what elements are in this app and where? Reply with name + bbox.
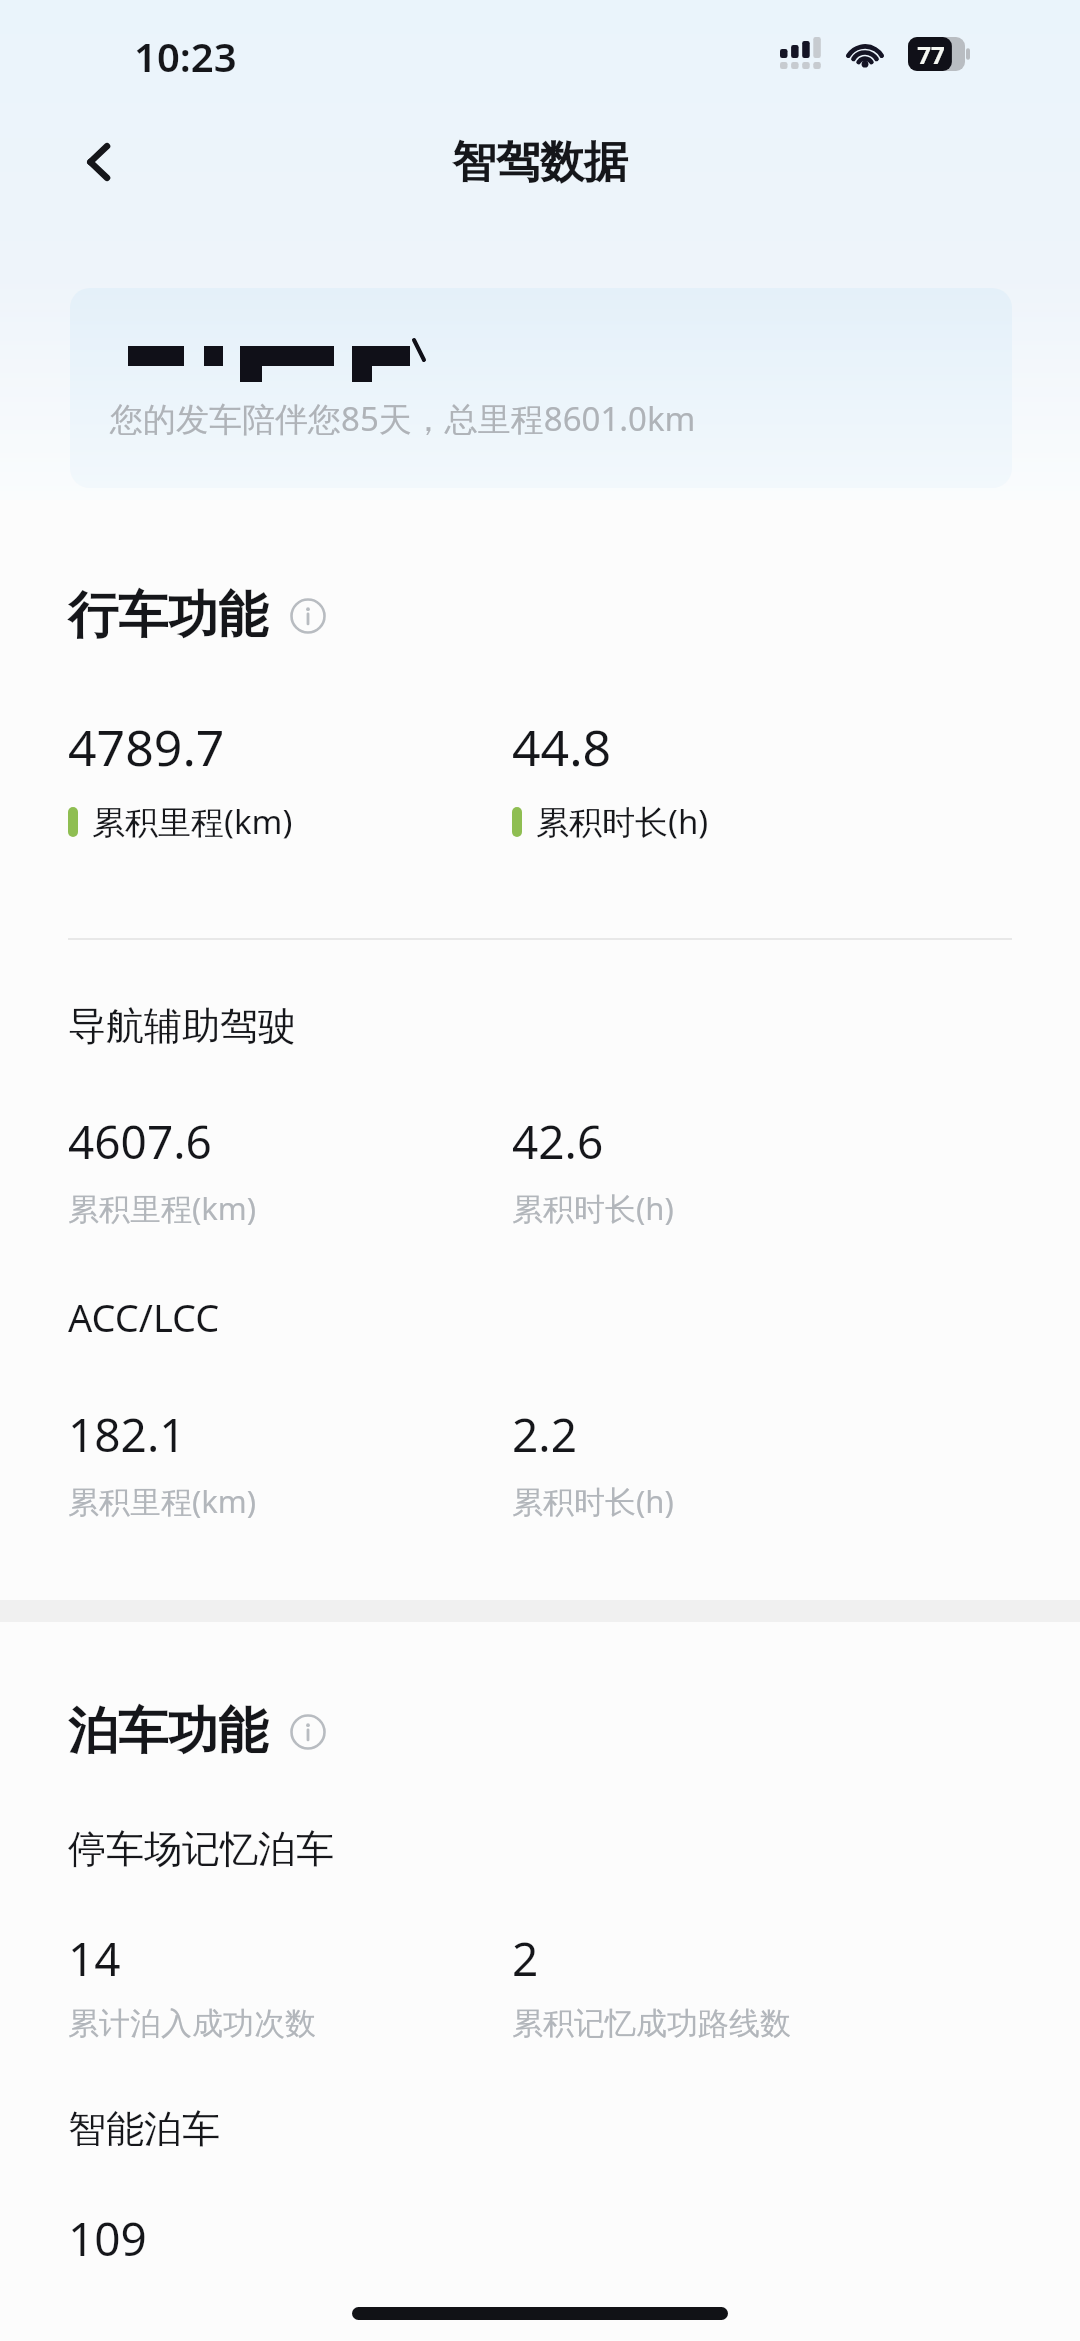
staticText: 累积里程(km): [68, 1187, 257, 1229]
staticText: 109: [68, 2207, 147, 2270]
staticText: 累计泊入成功次数: [68, 2004, 316, 2043]
staticText: 停车场记忆泊车: [68, 1825, 334, 1873]
staticText: 14: [68, 1927, 121, 1990]
staticText: 累积里程(km): [92, 799, 293, 844]
staticText: 导航辅助驾驶: [68, 1002, 296, 1050]
staticText: 44.8: [512, 713, 612, 781]
staticText: 泊车功能: [68, 1700, 268, 1763]
staticText: 42.6: [512, 1110, 604, 1173]
staticText: ACC/LCC: [68, 1291, 220, 1343]
staticText: 4789.7: [68, 713, 225, 781]
other: 说明: [290, 598, 326, 634]
staticText: 182.1: [68, 1403, 186, 1466]
staticText: 累积时长(h): [512, 1480, 674, 1522]
staticText: 累积里程(km): [68, 1480, 257, 1522]
staticText: 智能泊车: [68, 2105, 220, 2153]
staticText: 4607.6: [68, 1110, 212, 1173]
staticText: 2: [512, 1927, 539, 1990]
staticText: 行车功能: [68, 584, 268, 647]
staticText: 10:23: [134, 29, 237, 83]
button[interactable]: 行车功能: [68, 584, 326, 647]
staticText: 累积时长(h): [536, 799, 709, 844]
staticText: 智驾数据: [452, 135, 628, 190]
staticText: 2.2: [512, 1403, 577, 1466]
button[interactable]: 返回: [54, 116, 146, 208]
staticText: 累积记忆成功路线数: [512, 2004, 791, 2043]
button[interactable]: 您的发车陪伴您85天，总里程8601.0km: [70, 288, 1012, 488]
button[interactable]: 泊车功能: [68, 1700, 326, 1763]
other: 说明: [290, 1714, 326, 1750]
staticText: 77: [917, 38, 945, 71]
staticText: 您的发车陪伴您85天，总里程8601.0km: [110, 396, 696, 441]
staticText: 累积时长(h): [512, 1187, 674, 1229]
